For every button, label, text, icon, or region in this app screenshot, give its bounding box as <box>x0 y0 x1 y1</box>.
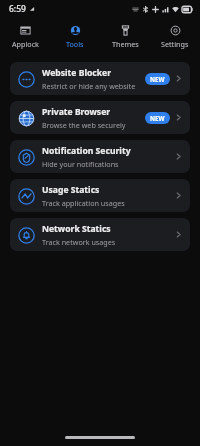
staticText: Hide your notifications <box>42 159 119 169</box>
staticText: Track network usages <box>42 237 116 247</box>
other: Open Network Statics <box>174 230 183 239</box>
button[interactable]: Website Blocker <box>10 62 190 95</box>
staticText: 6:59 <box>9 3 26 15</box>
staticText: Settings <box>161 39 189 49</box>
staticText: Usage Statics <box>42 184 100 196</box>
staticText: Tools <box>66 39 84 49</box>
staticText: Website Blocker <box>42 67 112 79</box>
staticText: Browse the web securely <box>42 120 126 130</box>
button[interactable]: Applock <box>0 22 50 52</box>
button[interactable]: Usage Statics <box>10 179 190 212</box>
button[interactable]: Settings <box>150 22 200 52</box>
staticText: Private Browser <box>42 106 111 118</box>
staticText: Track application usages <box>42 198 125 208</box>
other: Open Private Browser <box>174 113 183 122</box>
button[interactable]: Tools <box>50 22 100 52</box>
other: Open Notification Security <box>174 152 183 161</box>
staticText: Restrict or hide any website <box>42 81 136 91</box>
button[interactable]: Network Statics <box>10 218 190 251</box>
staticText: NEW <box>150 114 165 122</box>
staticText: NEW <box>150 75 165 83</box>
other: Open Website Blocker <box>174 74 183 83</box>
staticText: Network Statics <box>42 223 111 235</box>
staticText: Applock <box>12 39 39 49</box>
staticText: Themes <box>112 39 139 49</box>
staticText: Notification Security <box>42 145 131 157</box>
button[interactable]: Themes <box>100 22 150 52</box>
button[interactable]: Private Browser <box>10 101 190 134</box>
button[interactable]: Notification Security <box>10 140 190 173</box>
other: Open Usage Statics <box>174 191 183 200</box>
